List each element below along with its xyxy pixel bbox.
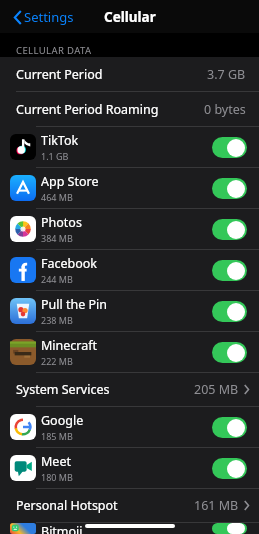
button[interactable]: Toggle cellular data [212,417,247,438]
button[interactable]: Current Period Roaming [0,92,259,126]
button[interactable]: Pull the Pin [0,291,259,331]
button[interactable]: Google [0,407,259,447]
button[interactable]: Toggle cellular data [212,178,247,199]
staticText: Current Period Roaming [16,101,159,118]
button[interactable]: Toggle cellular data [212,219,247,240]
staticText: System Services [16,381,110,398]
staticText: Cellular [104,8,156,26]
staticText: 238 MB [41,314,73,326]
button[interactable]: Toggle cellular data [212,523,247,534]
button[interactable]: Personal Hotspot [0,489,259,522]
staticText: 180 MB [41,471,73,483]
staticText: 3.7 GB [207,66,246,83]
staticText: Current Period [16,66,103,83]
button[interactable]: System Services [0,373,259,406]
staticText: Personal Hotspot [16,497,118,514]
staticText: CELLULAR DATA [16,44,92,57]
staticText: 185 MB [41,430,73,442]
staticText: Google [41,412,84,429]
button[interactable]: TikTok [0,127,259,167]
button[interactable]: Bitmoji [0,523,259,534]
button[interactable]: Toggle cellular data [212,301,247,322]
button[interactable]: Toggle cellular data [212,458,247,479]
button[interactable]: Current Period [0,57,259,91]
staticText: 0 bytes [204,101,246,118]
button[interactable]: Photos [0,209,259,249]
staticText: Facebook [41,255,98,272]
button[interactable]: Minecraft [0,332,259,372]
staticText: TikTok [41,132,79,149]
staticText: Settings [24,8,74,26]
staticText: 384 MB [41,232,73,244]
staticText: 161 MB [194,497,239,514]
staticText: Minecraft [41,337,98,354]
button[interactable]: Toggle cellular data [212,137,247,158]
button[interactable]: Meet [0,448,259,488]
button[interactable]: App Store [0,168,259,208]
button[interactable]: Toggle cellular data [212,260,247,281]
button[interactable]: Settings [10,4,78,30]
staticText: 244 MB [41,273,73,285]
staticText: Bitmoji [41,523,83,534]
button[interactable]: Toggle cellular data [212,342,247,363]
staticText: App Store [41,173,99,190]
staticText: 222 MB [41,355,73,367]
staticText: 1.1 GB [41,150,69,162]
staticText: Pull the Pin [41,296,108,313]
staticText: Meet [41,453,71,470]
button[interactable]: Facebook [0,250,259,290]
staticText: Photos [41,214,82,231]
staticText: 205 MB [194,381,239,398]
staticText: 464 MB [41,191,73,203]
